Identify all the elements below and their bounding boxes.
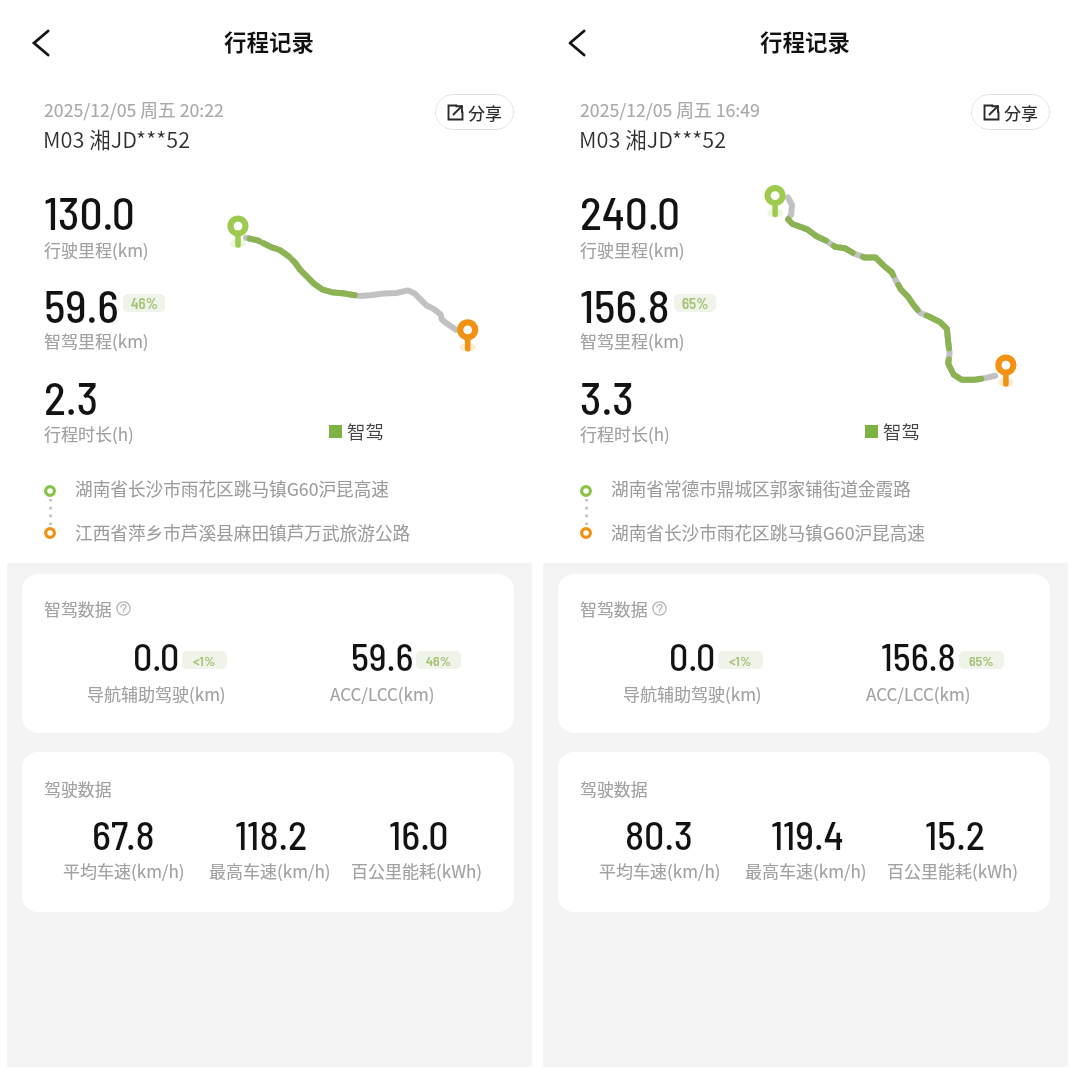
staticText: ACC/LCC(km) (866, 681, 971, 706)
button[interactable]: Back (552, 18, 602, 68)
staticText: 智驾 (347, 418, 385, 445)
staticText: 130.0 (44, 184, 135, 239)
staticText: 156.8 (881, 633, 956, 679)
staticText: 平均车速(km/h) (63, 858, 185, 883)
button[interactable]: 分享 (971, 94, 1050, 130)
staticText: M03 湘JD***52 (579, 123, 727, 154)
staticText: 湖南省长沙市雨花区跳马镇G60沪昆高速 (75, 476, 389, 502)
staticText: 平均车速(km/h) (599, 858, 721, 883)
staticText: 240.0 (580, 184, 681, 239)
button[interactable]: 分享 (435, 94, 514, 130)
staticText: 80.3 (625, 810, 693, 858)
staticText: 百公里能耗(kWh) (351, 858, 483, 883)
staticText: 智驾数据 (580, 596, 648, 620)
staticText: 0.0 (133, 633, 180, 679)
staticText: 分享 (468, 100, 502, 125)
staticText: 导航辅助驾驶(km) (87, 681, 226, 706)
staticText: 65% (969, 652, 994, 669)
staticText: 2025/12/05 周五 16:49 (580, 96, 760, 122)
staticText: 百公里能耗(kWh) (887, 858, 1019, 883)
staticText: 3.3 (580, 369, 634, 424)
staticText: 湖南省长沙市雨花区跳马镇G60沪昆高速 (611, 520, 925, 546)
staticText: 最高车速(km/h) (209, 858, 331, 883)
staticText: 最高车速(km/h) (745, 858, 867, 883)
staticText: 118.2 (235, 810, 308, 858)
staticText: ACC/LCC(km) (330, 681, 435, 706)
staticText: M03 湘JD***52 (43, 123, 191, 154)
staticText: 15.2 (925, 810, 985, 858)
staticText: 67.8 (92, 810, 155, 858)
staticText: 行驶里程(km) (580, 237, 685, 262)
staticText: <1% (729, 652, 752, 669)
staticText: 2.3 (44, 369, 99, 424)
staticText: 46% (131, 294, 158, 312)
staticText: 46% (426, 652, 451, 669)
staticText: 2025/12/05 周五 20:22 (44, 96, 224, 122)
button[interactable]: Back (16, 18, 66, 68)
staticText: 行程记录 (760, 25, 851, 58)
staticText: 湖南省常德市鼎城区郭家铺街道金霞路 (611, 476, 911, 502)
staticText: 行程记录 (224, 25, 315, 58)
staticText: 行驶里程(km) (44, 237, 149, 262)
staticText: 智驾里程(km) (44, 328, 149, 353)
staticText: 智驾数据 (44, 596, 112, 620)
staticText: 59.6 (44, 277, 119, 332)
staticText: 行程时长(h) (580, 421, 670, 446)
staticText: <1% (193, 652, 216, 669)
staticText: 156.8 (580, 277, 670, 332)
staticText: 0.0 (669, 633, 716, 679)
staticText: 驾驶数据 (580, 776, 648, 800)
staticText: 59.6 (351, 633, 414, 679)
staticText: 智驾里程(km) (580, 328, 685, 353)
staticText: 65% (682, 294, 709, 312)
staticText: 智驾 (883, 418, 921, 445)
staticText: 分享 (1004, 100, 1038, 125)
staticText: 江西省萍乡市芦溪县麻田镇芦万武旅游公路 (75, 520, 411, 546)
staticText: 驾驶数据 (44, 776, 112, 800)
staticText: 导航辅助驾驶(km) (623, 681, 762, 706)
staticText: 119.4 (771, 810, 844, 858)
staticText: 行程时长(h) (44, 421, 134, 446)
staticText: 16.0 (389, 810, 449, 858)
